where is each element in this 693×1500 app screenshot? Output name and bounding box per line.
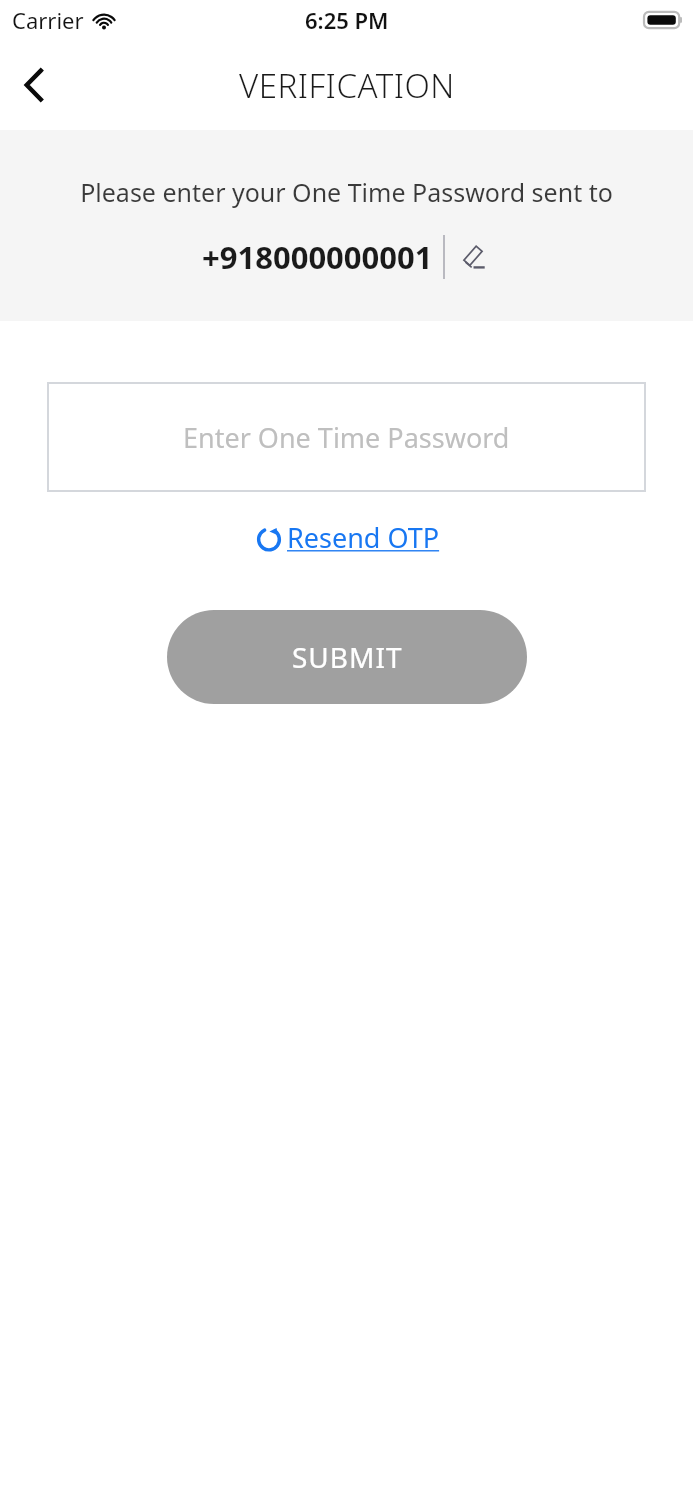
staticText: +918000000001 xyxy=(202,236,433,278)
staticText: Enter One Time Password xyxy=(183,419,510,456)
button[interactable]: SUBMIT xyxy=(167,610,527,704)
staticText: Resend OTP xyxy=(287,519,440,556)
button[interactable]: Edit phone number xyxy=(455,239,491,275)
button[interactable]: Resend OTP xyxy=(248,515,446,560)
staticText: VERIFICATION xyxy=(239,63,455,108)
staticText: Carrier xyxy=(12,5,84,35)
button[interactable]: Enter One Time Password xyxy=(47,382,646,492)
staticText: 6:25 PM xyxy=(305,5,389,35)
staticText: SUBMIT xyxy=(292,638,403,676)
staticText: Please enter your One Time Password sent… xyxy=(80,175,613,209)
button[interactable]: Back xyxy=(8,59,60,111)
